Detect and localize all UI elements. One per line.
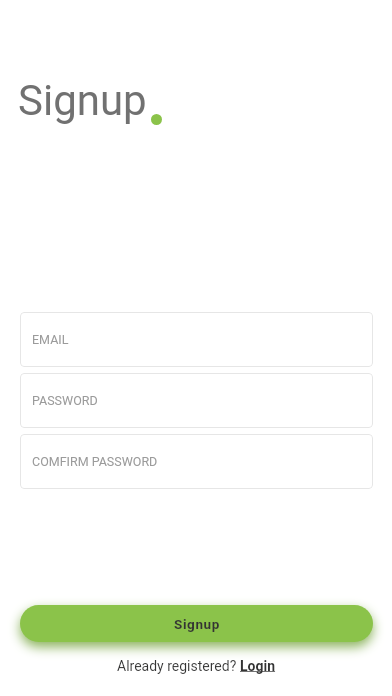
button[interactable]: Login bbox=[240, 658, 276, 674]
staticText: Signup bbox=[174, 616, 220, 632]
staticText: Already registered? bbox=[117, 658, 240, 674]
staticText: PASSWORD bbox=[32, 393, 98, 408]
button[interactable]: COMFIRM PASSWORD bbox=[20, 434, 373, 489]
other: Accent dot bbox=[151, 114, 162, 125]
button[interactable]: PASSWORD bbox=[20, 373, 373, 428]
button[interactable]: EMAIL bbox=[20, 312, 373, 367]
staticText: Signup bbox=[18, 76, 147, 125]
staticText: EMAIL bbox=[32, 332, 69, 347]
staticText: COMFIRM PASSWORD bbox=[32, 454, 158, 469]
button[interactable]: Signup bbox=[20, 605, 373, 642]
